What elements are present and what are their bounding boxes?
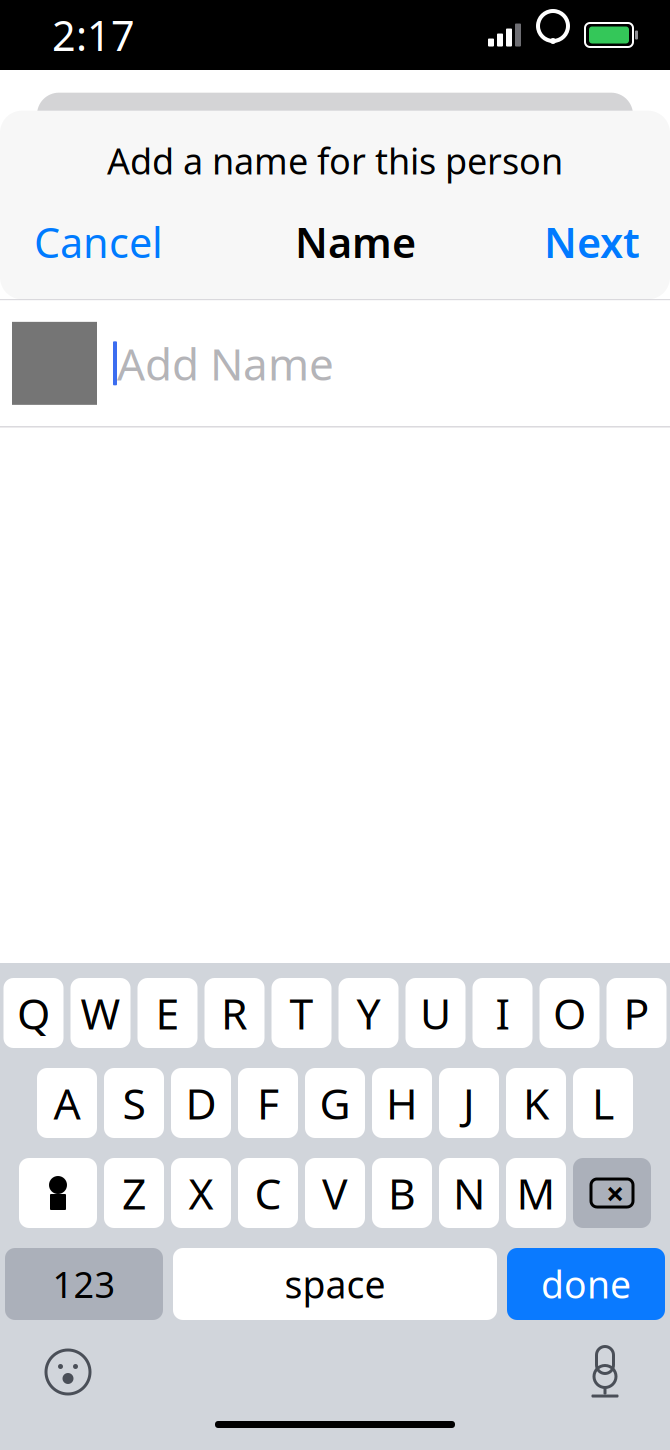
staticText: done — [541, 1259, 631, 1309]
staticText: Name — [295, 214, 416, 269]
staticText: V — [322, 1165, 348, 1221]
button[interactable]: Dictation — [588, 1340, 670, 1404]
button[interactable]: space — [173, 1248, 497, 1320]
staticText: O — [553, 985, 586, 1041]
staticText: K — [523, 1075, 549, 1131]
button[interactable]: R — [204, 978, 264, 1048]
button[interactable]: done — [507, 1248, 665, 1320]
button[interactable]: P — [606, 978, 666, 1048]
staticText: B — [388, 1165, 416, 1221]
staticText: space — [284, 1259, 385, 1309]
button[interactable]: U — [405, 978, 465, 1048]
staticText: R — [221, 985, 248, 1041]
staticText: U — [420, 985, 451, 1041]
button[interactable]: V — [305, 1158, 365, 1228]
button[interactable]: J — [439, 1068, 499, 1138]
button[interactable]: Y — [338, 978, 398, 1048]
button[interactable]: X — [171, 1158, 231, 1228]
staticText: Add a name for this person — [107, 137, 563, 184]
staticText: C — [254, 1165, 281, 1221]
button[interactable]: C — [238, 1158, 298, 1228]
button[interactable]: H — [372, 1068, 432, 1138]
staticText: D — [185, 1075, 216, 1131]
button[interactable]: T — [271, 978, 331, 1048]
staticText: J — [463, 1075, 475, 1131]
button[interactable]: O — [539, 978, 599, 1048]
button[interactable]: S — [104, 1068, 164, 1138]
button[interactable]: Shift — [19, 1158, 97, 1228]
button[interactable]: G — [305, 1068, 365, 1138]
staticText: Y — [356, 985, 380, 1041]
button[interactable]: M — [506, 1158, 566, 1228]
button[interactable]: E — [137, 978, 197, 1048]
button[interactable]: Delete — [573, 1158, 651, 1228]
button[interactable]: A — [37, 1068, 97, 1138]
staticText: H — [386, 1075, 418, 1131]
staticText: L — [592, 1075, 614, 1131]
staticText: I — [495, 985, 509, 1041]
button[interactable]: Next — [514, 204, 670, 279]
button[interactable]: Add Name — [0, 300, 670, 426]
button[interactable]: Emoji keyboard — [0, 1341, 91, 1403]
button[interactable]: Z — [104, 1158, 164, 1228]
staticText: E — [155, 985, 179, 1041]
staticText: F — [257, 1075, 279, 1131]
button[interactable]: L — [573, 1068, 633, 1138]
staticText: G — [319, 1075, 350, 1131]
staticText: X — [188, 1165, 213, 1221]
button[interactable]: F — [238, 1068, 298, 1138]
staticText: M — [516, 1165, 555, 1221]
staticText: Z — [122, 1165, 146, 1221]
button[interactable]: Q — [3, 978, 63, 1048]
staticText: 2:17 — [52, 8, 135, 62]
button[interactable]: W — [70, 978, 130, 1048]
staticText: Next — [544, 214, 640, 269]
button[interactable]: D — [171, 1068, 231, 1138]
staticText: S — [122, 1075, 145, 1131]
staticText: A — [53, 1075, 80, 1131]
button[interactable]: I — [472, 978, 532, 1048]
button[interactable]: B — [372, 1158, 432, 1228]
button[interactable]: Cancel — [0, 204, 197, 279]
button[interactable]: N — [439, 1158, 499, 1228]
staticText: T — [289, 985, 313, 1041]
staticText: × — [606, 1172, 624, 1214]
staticText: Add Name — [117, 334, 334, 392]
staticText: 123 — [52, 1260, 115, 1308]
staticText: Q — [17, 985, 50, 1041]
staticText: W — [80, 985, 120, 1041]
staticText: P — [623, 985, 649, 1041]
button[interactable]: 123 — [5, 1248, 163, 1320]
staticText: N — [453, 1165, 485, 1221]
button[interactable]: K — [506, 1068, 566, 1138]
staticText: Cancel — [34, 214, 163, 269]
